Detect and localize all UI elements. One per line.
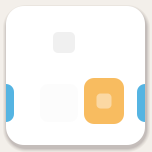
button[interactable]: Next app [137, 84, 152, 122]
button[interactable]: Selected app [84, 78, 124, 124]
button[interactable]: Previous app [0, 84, 14, 122]
